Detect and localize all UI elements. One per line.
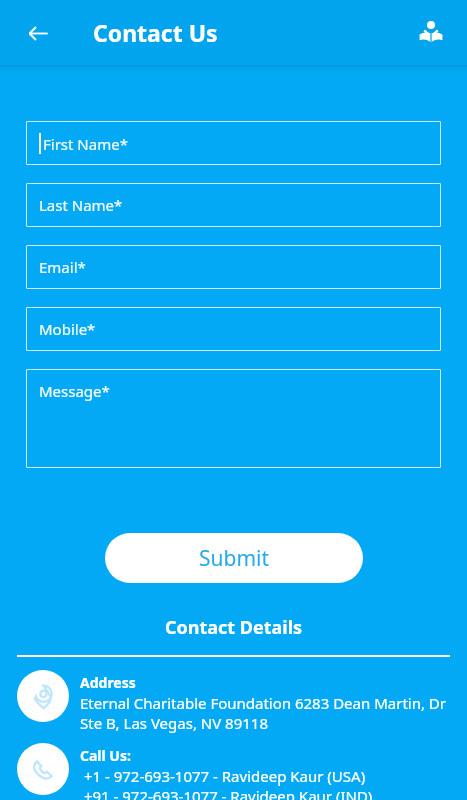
staticText: Eternal Charitable Foundation 6283 Dean …: [80, 693, 447, 713]
staticText: +91 - 972-693-1077 - Ravideep Kaur (IND): [80, 786, 373, 800]
staticText: Email*: [39, 257, 86, 277]
button[interactable]: Address: [17, 670, 457, 733]
staticText: Ste B, Las Vegas, NV 89118: [80, 713, 268, 733]
button[interactable]: Mobile*: [26, 307, 441, 351]
other: Call us: [17, 743, 69, 795]
staticText: Contact Us: [93, 17, 218, 48]
staticText: First Name*: [43, 134, 128, 154]
button[interactable]: Back: [16, 11, 60, 55]
staticText: Call Us:: [80, 746, 131, 765]
button[interactable]: Email*: [26, 245, 441, 289]
button[interactable]: First Name*: [26, 121, 441, 165]
staticText: Last Name*: [39, 195, 123, 215]
button[interactable]: Submit: [105, 533, 363, 583]
staticText: Submit: [199, 544, 270, 573]
other: Address: [17, 670, 69, 722]
staticText: Message*: [39, 381, 110, 401]
staticText: Contact Details: [26, 615, 441, 640]
button[interactable]: Last Name*: [26, 183, 441, 227]
staticText: +1 - 972-693-1077 - Ravideep Kaur (USA): [80, 766, 366, 786]
button[interactable]: Message*: [26, 369, 441, 468]
button[interactable]: Library: [411, 13, 451, 53]
staticText: Address: [80, 673, 136, 692]
button[interactable]: Call us: [17, 743, 457, 800]
staticText: Mobile*: [39, 319, 96, 339]
